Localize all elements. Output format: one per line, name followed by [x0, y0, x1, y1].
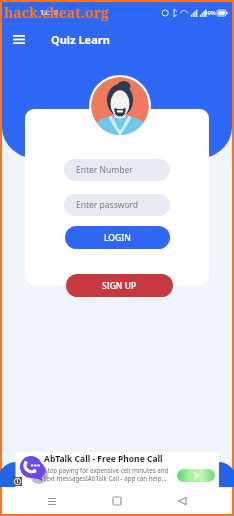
staticText: 12:18 — [40, 8, 58, 18]
button[interactable]: Enter password — [64, 194, 170, 216]
staticText: AbTalk Call - Free Phone Call — [44, 453, 163, 465]
button[interactable]: Recents — [37, 488, 67, 514]
staticText: Quiz Learn — [51, 32, 110, 47]
staticText: text messagesIAbTalk Call - app can help… — [44, 474, 167, 482]
staticText: LOGIN — [104, 232, 131, 244]
button[interactable]: Enter Number — [64, 159, 170, 181]
button[interactable]: SIGN UP — [66, 274, 173, 297]
staticText: 99% — [204, 9, 216, 17]
button[interactable]: Home — [102, 488, 132, 514]
button[interactable]: Back — [167, 488, 197, 514]
button[interactable]: LOGIN — [65, 226, 170, 249]
button[interactable]: Install — [177, 469, 215, 482]
staticText: Enter Number — [76, 164, 133, 176]
staticText: hack.cheat.org — [4, 3, 109, 22]
staticText: Stop paying for expensive cell minutes a… — [44, 466, 169, 474]
staticText: Enter password — [76, 199, 139, 211]
button[interactable]: AbTalk Call - Free Phone Call — [2, 452, 232, 488]
staticText: SIGN UP — [102, 280, 137, 292]
button[interactable]: Menu — [2, 22, 36, 56]
